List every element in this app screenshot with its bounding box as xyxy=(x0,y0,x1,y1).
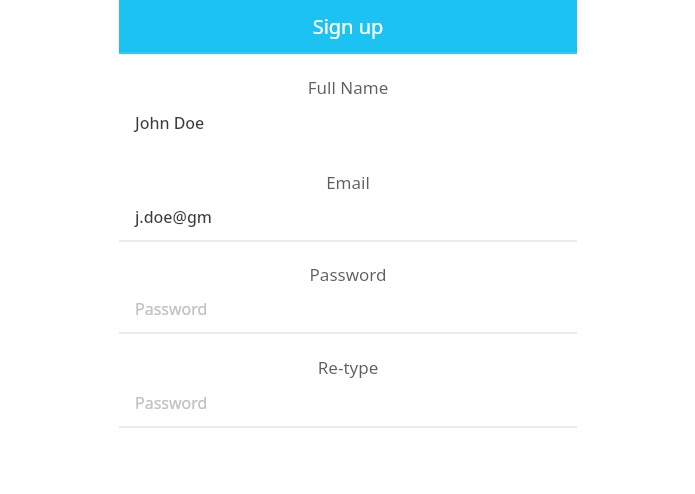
staticText: Full Name xyxy=(119,76,577,99)
staticText: John Doe xyxy=(135,112,205,134)
button[interactable]: Full Name xyxy=(119,54,577,148)
staticText: Password xyxy=(135,392,208,414)
button[interactable]: Password xyxy=(119,242,577,334)
staticText: Sign up xyxy=(119,13,577,40)
button[interactable]: Re-type xyxy=(119,334,577,428)
staticText: Re-type xyxy=(119,356,577,379)
staticText: Password xyxy=(119,263,577,286)
staticText: j.doe@gm xyxy=(135,206,213,228)
staticText: Email xyxy=(119,171,577,194)
button[interactable]: Sign up xyxy=(119,0,577,54)
staticText: Password xyxy=(135,298,208,320)
button[interactable]: Email xyxy=(119,148,577,242)
